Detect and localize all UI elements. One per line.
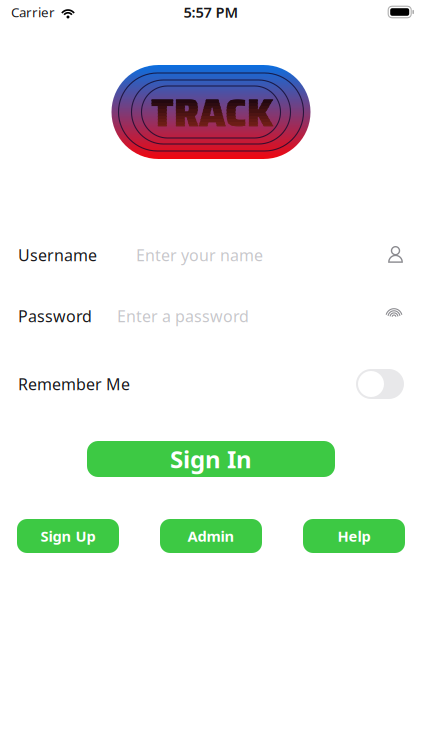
staticText: 5:57 PM [183,2,238,22]
button[interactable]: Help [303,519,405,553]
staticText: TRACK [151,83,273,143]
staticText: Username [18,244,97,266]
staticText: Admin [187,526,234,546]
staticText: TRACK [151,83,273,143]
staticText: TRACK [151,83,273,143]
staticText: Password [18,305,92,327]
button[interactable]: Username [0,240,422,270]
staticText: Sign Up [40,526,95,546]
staticText: Sign In [170,443,252,475]
staticText: TRACK [151,83,273,143]
button[interactable]: Password [0,301,422,331]
staticText: Help [337,526,370,546]
staticText: TRACK [151,83,273,143]
staticText: TRACK [151,83,273,143]
button[interactable]: Admin [160,519,262,553]
staticText: TRACK [151,83,273,143]
button[interactable]: Sign Up [17,519,119,553]
staticText: Remember Me [18,373,130,395]
staticText: Carrier [11,3,55,21]
staticText: TRACK [151,83,273,143]
staticText: Enter your name [136,244,263,266]
staticText: TRACK [151,83,273,143]
button[interactable]: Sign In [87,441,335,477]
staticText: Enter a password [117,305,249,327]
button[interactable]: Remember Me [0,369,422,399]
staticText: TRACK [151,83,273,143]
